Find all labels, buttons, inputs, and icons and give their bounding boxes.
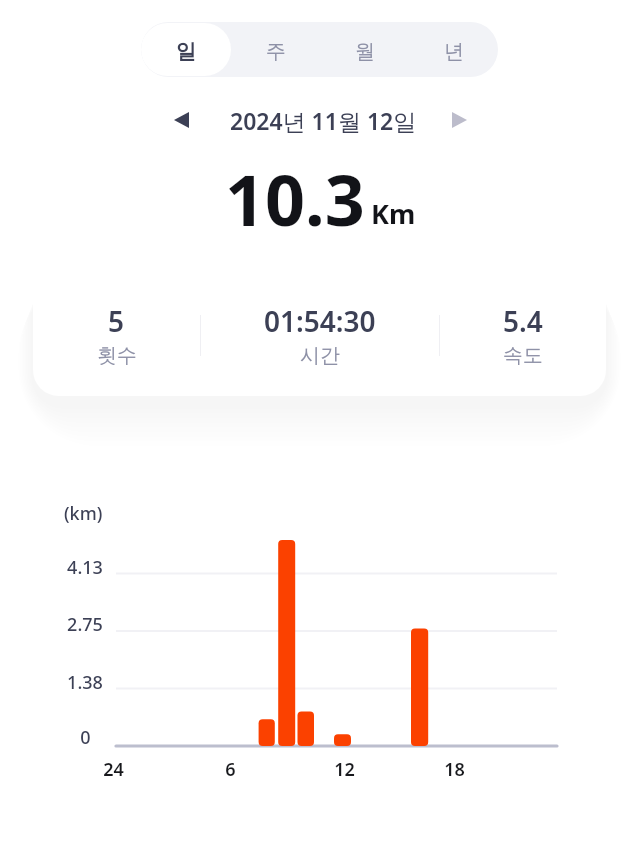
button[interactable]: 년 [409,23,498,76]
staticText: 2.75 [67,612,103,637]
staticText: 5.4 [503,302,543,340]
staticText: 18 [444,757,465,782]
staticText: (km) [64,501,103,526]
staticText: 년 [444,39,464,64]
staticText: 월 [355,39,375,64]
staticText: 10.3 [225,151,365,246]
staticText: 24 [103,757,124,782]
staticText: 2024년 11월 12일 [230,105,417,136]
button[interactable]: 주 [231,23,320,76]
button[interactable]: 5.4 [440,274,606,396]
button[interactable]: Previous day [159,98,203,142]
button[interactable]: Next day [437,98,481,142]
staticText: 시간 [300,343,340,368]
staticText: 12 [334,757,355,782]
staticText: 4.13 [67,555,103,580]
button[interactable]: 일 [141,23,231,76]
button[interactable]: 월 [320,23,409,76]
staticText: 0 [80,725,91,750]
staticText: 횟수 [97,343,137,368]
button[interactable]: 5 [33,274,200,396]
staticText: Km [371,195,416,232]
button[interactable]: 01:54:30 [201,274,439,396]
staticText: 속도 [503,343,543,368]
staticText: 5 [108,302,125,340]
staticText: 6 [225,757,236,782]
staticText: 주 [266,39,286,64]
staticText: 1.38 [67,670,103,695]
staticText: 일 [176,39,196,64]
staticText: 01:54:30 [264,302,376,340]
